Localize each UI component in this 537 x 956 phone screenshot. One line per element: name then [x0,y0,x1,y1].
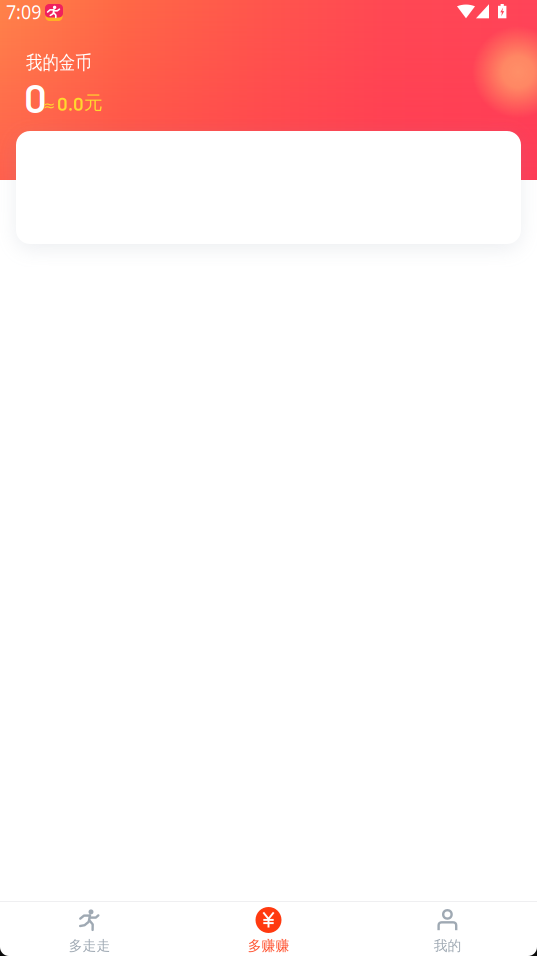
staticText: 0.0元 [57,91,103,114]
button[interactable]: 多走走 [0,902,179,956]
button[interactable]: 多赚赚 [179,902,358,956]
staticText: 我的金币 [26,51,106,76]
button[interactable]: 我的 [358,902,537,956]
staticText: 我的 [431,936,463,956]
staticText: 0 [24,73,47,121]
staticText: 多走走 [65,936,113,956]
staticText: 7:09 [6,0,48,27]
staticText: ≈ [43,97,55,114]
staticText: 多赚赚 [244,936,292,956]
